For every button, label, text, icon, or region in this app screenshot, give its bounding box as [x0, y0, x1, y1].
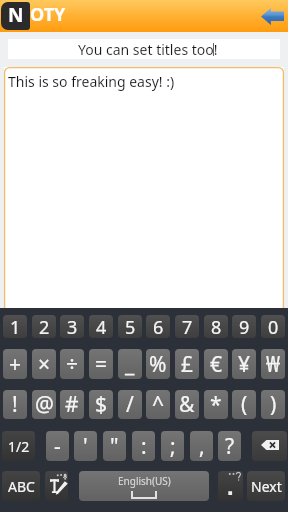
button[interactable]: ¥ — [232, 349, 256, 379]
button[interactable]: 9 — [232, 315, 256, 338]
button[interactable]: : — [132, 431, 155, 461]
button[interactable]: You can set titles too! — [8, 39, 280, 59]
button[interactable]: ÷ — [60, 349, 84, 379]
staticText: $ — [95, 390, 108, 419]
staticText: : — [141, 432, 147, 461]
staticText: × — [38, 350, 51, 379]
button[interactable]: Next — [247, 471, 285, 501]
staticText: 3 — [67, 315, 78, 338]
staticText: 6 — [153, 315, 164, 338]
button[interactable]: - — [46, 431, 69, 461]
staticText: _ — [125, 350, 135, 379]
staticText: ( — [241, 390, 248, 419]
staticText: ÷ — [66, 350, 79, 379]
staticText: 1 — [10, 315, 21, 338]
staticText: ? — [225, 432, 235, 461]
staticText: , — [199, 432, 205, 461]
staticText: / — [126, 390, 134, 419]
button[interactable]: € — [204, 349, 228, 379]
staticText: ₩ — [266, 350, 281, 379]
staticText: 2 — [39, 315, 50, 338]
staticText: You can set titles too! — [78, 40, 218, 59]
button[interactable]: 6 — [146, 315, 170, 338]
button[interactable]: $ — [89, 390, 113, 419]
button[interactable]: ( — [232, 390, 256, 419]
button[interactable]: 0 — [261, 315, 285, 338]
staticText: £ — [181, 350, 194, 379]
button[interactable]: # — [60, 390, 84, 419]
staticText: 7 — [182, 315, 193, 338]
button[interactable]: Backspace — [252, 431, 287, 461]
button[interactable]: @ — [32, 390, 56, 419]
staticText: ABC — [8, 477, 35, 496]
button[interactable]: ) — [261, 390, 285, 419]
staticText: ¥ — [238, 350, 251, 379]
button[interactable]: ₩ — [261, 349, 285, 379]
staticText: 8 — [211, 315, 222, 338]
button[interactable]: 3 — [60, 315, 84, 338]
button[interactable]: ^ — [146, 390, 170, 419]
staticText: N — [8, 2, 24, 28]
button[interactable]: * — [204, 390, 228, 419]
staticText: € — [210, 350, 223, 379]
button[interactable]: / — [118, 390, 142, 419]
button[interactable]: + — [3, 349, 27, 379]
staticText: 1/2 — [8, 437, 30, 456]
button[interactable]: , — [190, 431, 213, 461]
button[interactable]: % — [146, 349, 170, 379]
button[interactable]: = — [89, 349, 113, 379]
button[interactable]: N — [1, 2, 30, 30]
staticText: " — [110, 432, 119, 461]
button[interactable]: ; — [161, 431, 184, 461]
button[interactable]: Space — [79, 471, 209, 501]
button[interactable]: & — [175, 390, 199, 419]
button[interactable]: 5 — [118, 315, 142, 338]
staticText: Next — [251, 477, 282, 496]
button[interactable]: " — [103, 431, 126, 461]
staticText: @ — [35, 390, 54, 419]
staticText: OTY — [30, 2, 66, 27]
button[interactable]: 4 — [89, 315, 113, 338]
button[interactable]: £ — [175, 349, 199, 379]
staticText: ! — [12, 390, 18, 419]
staticText: 5 — [125, 315, 136, 338]
button[interactable]: ' — [74, 431, 97, 461]
button[interactable]: This is so freaking easy! :) — [4, 67, 284, 308]
button[interactable]: 8 — [204, 315, 228, 338]
staticText: % — [149, 350, 167, 379]
staticText: # — [65, 390, 79, 419]
staticText: ; — [170, 432, 176, 461]
staticText: ' — [83, 432, 88, 461]
button[interactable]: ABC — [2, 471, 40, 501]
staticText: ) — [270, 390, 277, 419]
button[interactable]: ? — [218, 431, 241, 461]
staticText: English(US) — [118, 474, 171, 488]
button[interactable]: Punctuation — [218, 471, 243, 501]
staticText: + — [9, 350, 22, 379]
button[interactable]: Back — [261, 8, 284, 25]
staticText: - — [54, 432, 61, 461]
button[interactable]: 1/2 — [2, 431, 35, 461]
staticText: This is so freaking easy! :) — [8, 72, 175, 91]
button[interactable]: Handwriting input — [45, 471, 68, 501]
button[interactable]: ! — [3, 390, 27, 419]
button[interactable]: 1 — [3, 315, 27, 338]
staticText: 4 — [96, 315, 107, 338]
staticText: & — [179, 390, 195, 419]
staticText: * — [210, 390, 222, 419]
button[interactable]: × — [32, 349, 56, 379]
staticText: ^ — [152, 390, 165, 419]
staticText: = — [95, 350, 108, 379]
staticText: 0 — [268, 315, 279, 338]
button[interactable]: 2 — [32, 315, 56, 338]
button[interactable]: _ — [118, 349, 142, 379]
button[interactable]: 7 — [175, 315, 199, 338]
staticText: 9 — [239, 315, 250, 338]
